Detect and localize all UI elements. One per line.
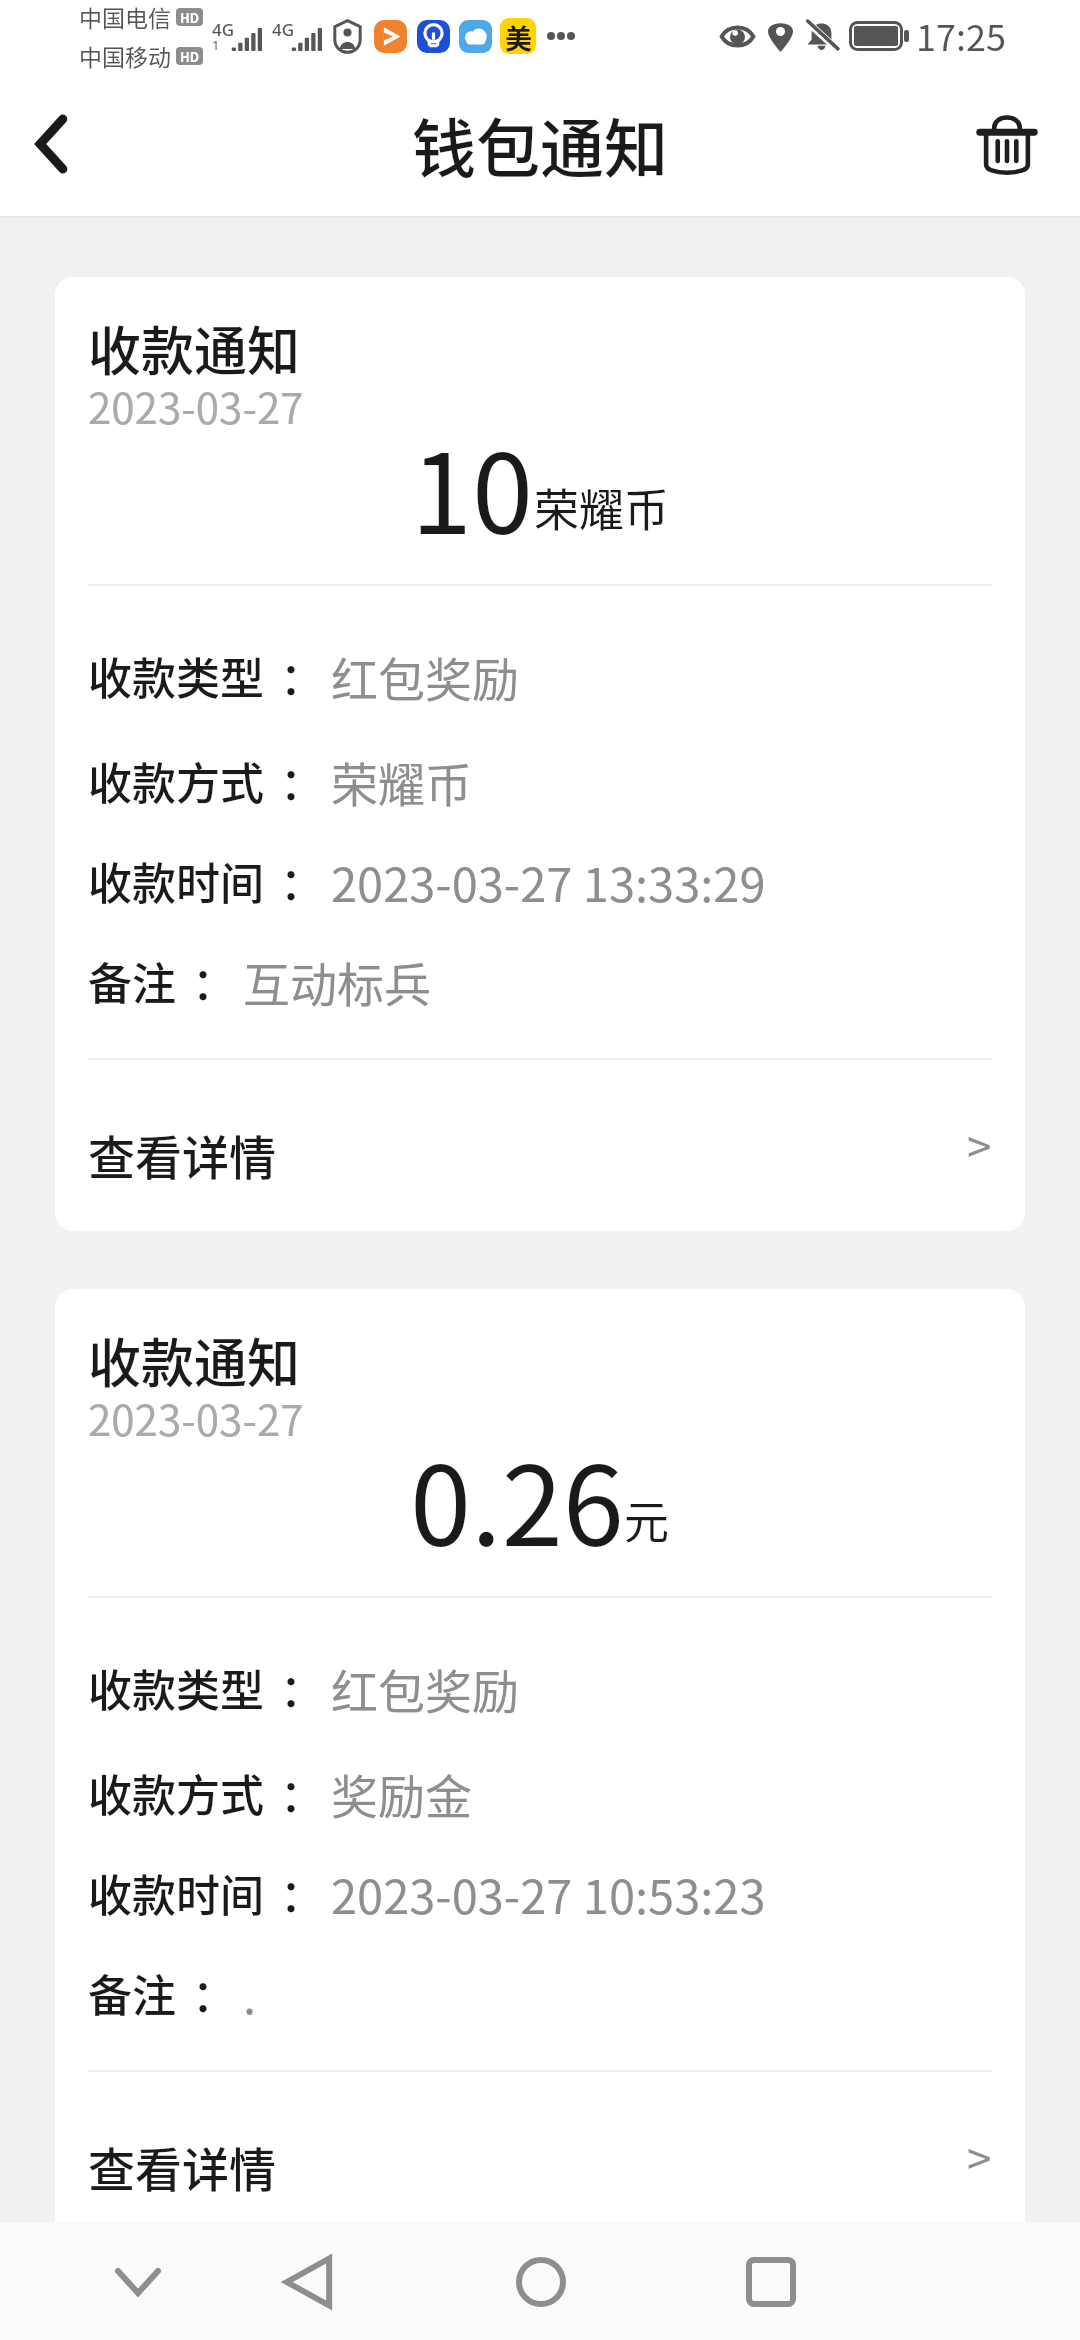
staticText: > xyxy=(967,2124,992,2188)
staticText: 收款时间 xyxy=(88,1861,264,1925)
staticText: ： xyxy=(280,1861,324,1925)
staticText: 荣耀币 xyxy=(331,747,472,815)
button[interactable]: Recents xyxy=(713,2224,828,2339)
staticText: 10 xyxy=(411,406,534,565)
staticText: 收款方式 xyxy=(88,1761,264,1825)
button[interactable]: Back xyxy=(250,2224,365,2339)
staticText: 备注 xyxy=(88,949,176,1013)
staticText: 中国电信 xyxy=(79,0,171,33)
button[interactable]: Back xyxy=(0,72,103,216)
staticText: 收款方式 xyxy=(88,749,264,813)
button[interactable]: Hide keyboard xyxy=(80,2224,195,2339)
button[interactable]: 收款通知 xyxy=(55,277,1025,1231)
staticText: 2023-03-27 xyxy=(88,375,304,436)
staticText: 4G xyxy=(212,18,235,41)
staticText: 4G xyxy=(272,18,295,41)
staticText: 2023-03-27 13:33:29 xyxy=(331,847,766,915)
staticText: 红包奖励 xyxy=(331,1654,519,1722)
staticText: 17:25 xyxy=(916,9,1006,61)
staticText: 荣耀币 xyxy=(534,475,670,540)
staticText: HD xyxy=(180,47,200,65)
staticText: 奖励金 xyxy=(331,1759,472,1827)
staticText: 红包奖励 xyxy=(331,642,519,710)
button[interactable]: Home xyxy=(483,2224,598,2339)
staticText: 0.26 xyxy=(410,1418,624,1577)
staticText: . xyxy=(243,1959,257,2027)
staticText: 中国移动 xyxy=(79,39,171,72)
staticText: 收款时间 xyxy=(88,849,264,913)
button[interactable]: 查看详情 xyxy=(55,2083,1025,2222)
staticText: 收款类型 xyxy=(88,644,264,708)
staticText: HD xyxy=(180,8,200,26)
staticText: 备注 xyxy=(88,1961,176,2025)
staticText: ： xyxy=(192,949,236,1013)
staticText: 收款通知 xyxy=(88,310,300,387)
button[interactable]: 收款通知 xyxy=(55,1289,1025,2222)
staticText: 查看详情 xyxy=(88,1120,276,1188)
staticText: 2023-03-27 xyxy=(88,1387,304,1448)
staticText: 互动标兵 xyxy=(243,947,431,1015)
button[interactable]: Delete xyxy=(970,72,1044,216)
staticText: ： xyxy=(192,1961,236,2025)
staticText: ： xyxy=(280,1656,324,1720)
staticText: ： xyxy=(280,749,324,813)
staticText: > xyxy=(967,1112,992,1176)
staticText: 查看详情 xyxy=(88,2132,276,2200)
staticText: ： xyxy=(280,1761,324,1825)
staticText: 钱包通知 xyxy=(412,98,668,191)
staticText: 收款类型 xyxy=(88,1656,264,1720)
staticText: ： xyxy=(280,849,324,913)
staticText: 元 xyxy=(624,1487,670,1552)
staticText: 2023-03-27 10:53:23 xyxy=(331,1859,766,1927)
staticText: ： xyxy=(280,644,324,708)
staticText: 美 xyxy=(505,18,532,54)
button[interactable]: 查看详情 xyxy=(55,1071,1025,1231)
staticText: 收款通知 xyxy=(88,1322,300,1399)
staticText: 1 xyxy=(212,36,220,54)
